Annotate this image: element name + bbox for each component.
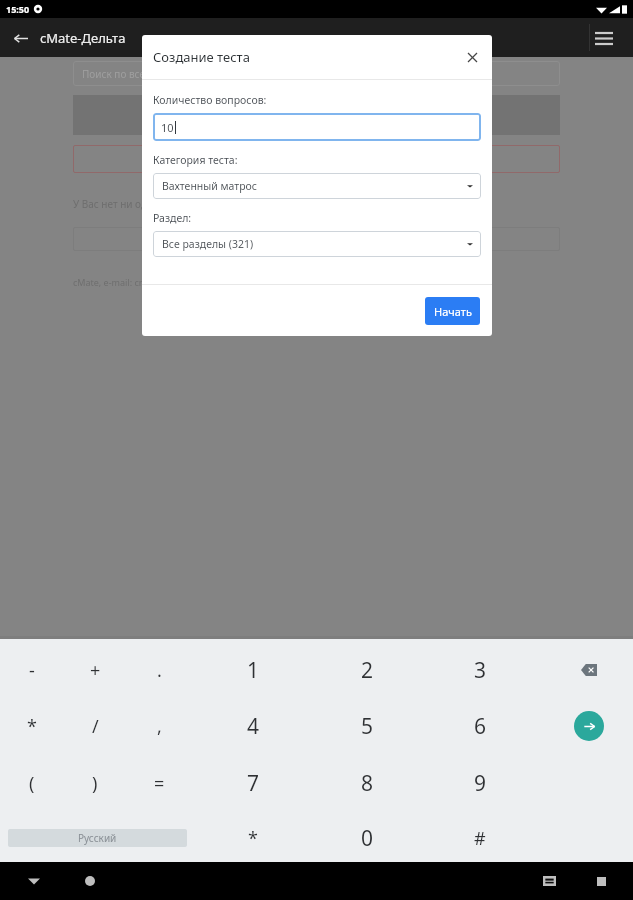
button[interactable]: 10	[153, 113, 481, 141]
staticText: Категория теста:	[153, 153, 238, 167]
staticText: 15:50	[6, 3, 30, 15]
staticText: Создание теста	[153, 48, 250, 66]
button[interactable]: Backspace	[575, 656, 603, 684]
button[interactable]: *	[225, 817, 281, 859]
button[interactable]: Back	[4, 22, 36, 54]
staticText: /	[92, 714, 99, 739]
staticText: *	[248, 826, 258, 851]
staticText: Начать	[434, 304, 472, 319]
staticText: -	[29, 658, 35, 683]
staticText: 5	[361, 712, 374, 741]
button[interactable]: Все разделы (321)	[153, 231, 481, 257]
button[interactable]: /	[67, 705, 123, 747]
staticText: +	[90, 658, 101, 683]
button[interactable]: Русский	[8, 829, 187, 847]
staticText: (	[29, 771, 35, 796]
staticText: 6	[474, 712, 487, 741]
button[interactable]: 5	[339, 705, 395, 747]
button[interactable]: Back	[20, 867, 48, 895]
staticText: =	[154, 771, 165, 796]
button[interactable]: Начать	[425, 297, 480, 325]
button[interactable]: *	[4, 705, 60, 747]
button[interactable]: -	[4, 649, 60, 691]
staticText: 9	[474, 769, 487, 798]
button[interactable]: 0	[339, 817, 395, 859]
button[interactable]: 2	[339, 649, 395, 691]
staticText: 3	[474, 656, 487, 685]
staticText: #	[474, 826, 486, 851]
button[interactable]: Switch keyboard	[535, 867, 563, 895]
staticText: У Вас нет ни одного теста	[73, 197, 198, 211]
button[interactable]: ,	[131, 705, 187, 747]
button[interactable]: Close	[459, 44, 485, 70]
staticText: )	[92, 771, 98, 796]
button[interactable]: .	[131, 649, 187, 691]
staticText: 10	[161, 120, 174, 135]
button[interactable]: 3	[452, 649, 508, 691]
button[interactable]: 6	[452, 705, 508, 747]
staticText: 2	[361, 656, 374, 685]
staticText: *	[27, 714, 37, 739]
staticText: Поиск по всем вопросам	[82, 67, 204, 81]
staticText: .	[157, 658, 162, 683]
button[interactable]: =	[131, 762, 187, 804]
staticText: 0	[361, 824, 374, 853]
button[interactable]: 8	[339, 762, 395, 804]
staticText: Все разделы (321)	[162, 237, 254, 251]
button[interactable]: Menu	[589, 23, 619, 53]
staticText: Вахтенный матрос	[162, 179, 257, 193]
button[interactable]: +	[67, 649, 123, 691]
button[interactable]: 9	[452, 762, 508, 804]
button[interactable]: )	[67, 762, 123, 804]
staticText: cMate-Дельта	[40, 29, 126, 47]
button[interactable]: (	[4, 762, 60, 804]
staticText: cMate, e-mail: cmate@mail.ru	[73, 276, 199, 288]
button[interactable]: Enter	[574, 711, 604, 741]
button[interactable]: 1	[225, 649, 281, 691]
button[interactable]: Recents	[587, 867, 615, 895]
staticText: 8	[361, 769, 374, 798]
staticText: 4	[247, 712, 260, 741]
button[interactable]: #	[452, 817, 508, 859]
button[interactable]: 7	[225, 762, 281, 804]
staticText: ,	[157, 714, 162, 739]
staticText: 1	[247, 656, 260, 685]
button[interactable]: Home	[76, 867, 104, 895]
staticText: Количество вопросов:	[153, 93, 267, 107]
staticText: 7	[247, 769, 260, 798]
button[interactable]: 4	[225, 705, 281, 747]
staticText: Русский	[78, 831, 117, 845]
staticText: Раздел:	[153, 211, 192, 225]
button[interactable]: Вахтенный матрос	[153, 173, 481, 199]
